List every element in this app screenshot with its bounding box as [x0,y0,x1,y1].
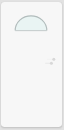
button[interactable]: Settings [44,54,56,66]
